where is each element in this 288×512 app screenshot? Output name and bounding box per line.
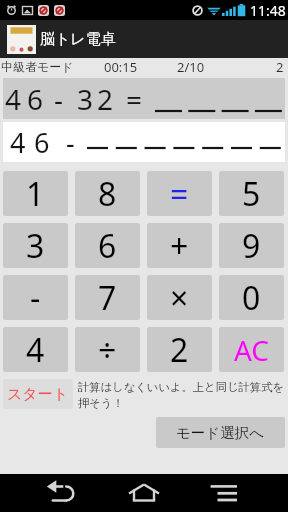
staticText: 8: [98, 172, 117, 216]
button[interactable]: 0: [219, 275, 284, 320]
button[interactable]: 1: [3, 171, 68, 216]
staticText: 6: [34, 124, 50, 161]
button[interactable]: スタート: [3, 379, 73, 409]
staticText: 00:15: [104, 58, 138, 75]
staticText: 2: [97, 80, 114, 118]
button[interactable]: 9: [219, 223, 284, 268]
staticText: ÷: [98, 328, 117, 372]
staticText: -: [54, 80, 64, 118]
button[interactable]: ×: [147, 275, 212, 320]
staticText: モード選択へ: [176, 424, 265, 442]
staticText: =: [126, 80, 143, 118]
staticText: 計算はしなくいいよ。上と同じ計算式を: [78, 380, 284, 394]
staticText: 4: [26, 328, 45, 372]
staticText: 1: [26, 172, 45, 216]
button[interactable]: -: [3, 275, 68, 320]
staticText: 3: [77, 80, 94, 118]
staticText: ×: [170, 276, 189, 320]
staticText: 脳トレ電卓: [40, 30, 116, 49]
button[interactable]: 5: [219, 171, 284, 216]
staticText: 2: [276, 58, 284, 75]
staticText: -: [30, 276, 41, 320]
button[interactable]: ÷: [75, 327, 140, 372]
staticText: 3: [26, 224, 45, 268]
button[interactable]: =: [147, 171, 212, 216]
button[interactable]: Back: [33, 474, 89, 512]
staticText: 4: [5, 80, 22, 118]
staticText: 11:48: [250, 1, 286, 20]
button[interactable]: モード選択へ: [156, 417, 285, 448]
staticText: 4: [10, 124, 26, 161]
button[interactable]: 2: [147, 327, 212, 372]
staticText: 2/10: [177, 58, 205, 75]
button[interactable]: 4: [3, 327, 68, 372]
staticText: 7: [98, 276, 117, 320]
button[interactable]: 8: [75, 171, 140, 216]
staticText: 6: [27, 80, 44, 118]
staticText: 9: [242, 224, 261, 268]
button[interactable]: Home: [118, 474, 170, 512]
staticText: AC: [234, 331, 270, 369]
button[interactable]: 7: [75, 275, 140, 320]
staticText: スタート: [7, 385, 69, 404]
staticText: +: [170, 224, 189, 268]
button[interactable]: Menu: [200, 474, 250, 512]
button[interactable]: +: [147, 223, 212, 268]
button[interactable]: AC: [219, 327, 284, 372]
staticText: =: [170, 172, 189, 216]
staticText: 押そう！: [78, 396, 124, 410]
staticText: -: [66, 124, 75, 161]
button[interactable]: 6: [75, 223, 140, 268]
staticText: 5: [242, 172, 261, 216]
staticText: 0: [242, 276, 261, 320]
staticText: 6: [98, 224, 117, 268]
staticText: 2: [170, 328, 189, 372]
button[interactable]: 3: [3, 223, 68, 268]
staticText: 中級者モード: [1, 59, 74, 74]
